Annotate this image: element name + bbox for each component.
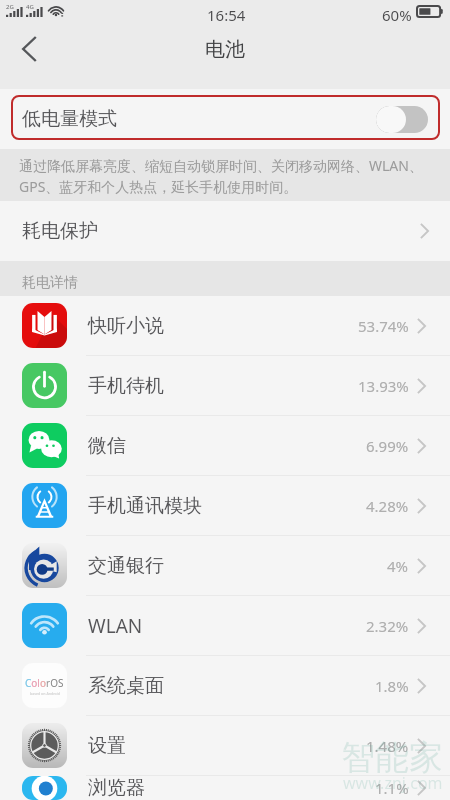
staticText: 快听小说 xyxy=(88,314,164,338)
button[interactable]: 手机通讯模块 xyxy=(0,476,450,535)
staticText: 交通银行 xyxy=(88,554,164,578)
button[interactable]: 浏览器 xyxy=(0,776,450,800)
staticText: 耗电详情 xyxy=(22,274,78,292)
staticText: 60% xyxy=(382,5,412,25)
button[interactable]: ColorOS xyxy=(0,656,450,715)
staticText: 1.48% xyxy=(366,736,409,756)
staticText: 设置 xyxy=(88,734,126,758)
staticText: 微信 xyxy=(88,434,126,458)
staticText: www.znj.com xyxy=(343,772,443,794)
staticText: 53.74% xyxy=(358,316,409,336)
staticText: ColorOS xyxy=(25,676,64,690)
button[interactable]: 交通银行 xyxy=(0,536,450,595)
button[interactable]: 耗电保护 xyxy=(0,201,450,261)
button[interactable]: 快听小说 xyxy=(0,296,450,355)
staticText: 智能家 xyxy=(341,736,443,779)
staticText: 4.28% xyxy=(366,496,409,516)
staticText: 通过降低屏幕亮度、缩短自动锁屏时间、关闭移动网络、WLAN、GPS、蓝牙和个人热… xyxy=(19,156,438,197)
button[interactable]: 设置 xyxy=(0,716,450,775)
staticText: 系统桌面 xyxy=(88,674,164,698)
staticText: 手机通讯模块 xyxy=(88,494,202,518)
button[interactable]: Low battery mode toggle xyxy=(376,106,428,133)
staticText: 低电量模式 xyxy=(22,107,117,131)
staticText: WLAN xyxy=(88,613,143,639)
staticText: 耗电保护 xyxy=(22,219,98,243)
staticText: 13.93% xyxy=(358,376,409,396)
staticText: 2G xyxy=(6,3,14,11)
button[interactable]: 低电量模式 xyxy=(0,89,450,149)
button[interactable]: 手机待机 xyxy=(0,356,450,415)
button[interactable]: Back xyxy=(3,30,55,68)
staticText: 电池 xyxy=(205,37,245,62)
staticText: 6.99% xyxy=(366,436,409,456)
staticText: 手机待机 xyxy=(88,374,164,398)
button[interactable]: WLAN xyxy=(0,596,450,655)
staticText: 16:54 xyxy=(207,5,246,25)
button[interactable]: 微信 xyxy=(0,416,450,475)
staticText: based on Android xyxy=(30,691,60,696)
staticText: 浏览器 xyxy=(88,776,145,800)
staticText: 1.1% xyxy=(375,778,409,798)
staticText: 1.8% xyxy=(375,676,409,696)
staticText: 4% xyxy=(387,556,409,576)
staticText: 2.32% xyxy=(366,616,409,636)
staticText: 4G xyxy=(26,3,34,11)
